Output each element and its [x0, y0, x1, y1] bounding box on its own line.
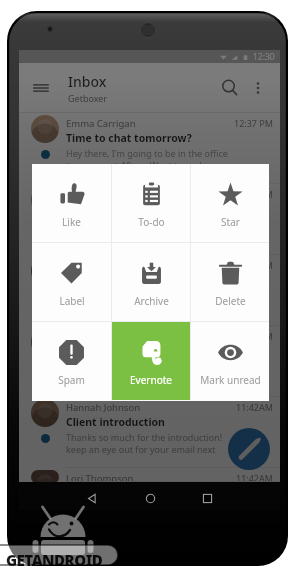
staticText: 12:00 PM	[234, 259, 273, 271]
button[interactable]: Compose	[228, 428, 270, 470]
staticText: Ricky Lane	[66, 259, 113, 272]
staticText: Lunch on Thursday?	[66, 273, 171, 287]
staticText: Archive	[134, 294, 169, 308]
staticText: month attached to this email.	[66, 372, 191, 384]
staticText: I found a great new place around	[66, 289, 207, 301]
button[interactable]: Ricky Lane	[19, 255, 280, 326]
button[interactable]: More options	[247, 77, 269, 99]
button[interactable]: Hannah Johnson	[19, 397, 280, 468]
button[interactable]: Like	[32, 164, 111, 242]
staticText: Weekly report attached	[66, 202, 190, 216]
staticText: Spam	[58, 373, 85, 387]
button[interactable]: Evernote	[112, 322, 190, 400]
button[interactable]: Archive	[112, 243, 190, 321]
staticText: Jerome Bell	[66, 188, 117, 201]
staticText: 12:30	[253, 51, 275, 63]
button[interactable]: Back	[82, 488, 102, 508]
button[interactable]: To-do	[112, 164, 190, 242]
staticText: Mark unread	[200, 373, 261, 387]
staticText: Hannah Johnson	[66, 401, 141, 414]
staticText: To-do	[138, 215, 165, 229]
staticText: Carter Mills	[66, 330, 117, 343]
staticText: Inbox	[68, 72, 107, 91]
button[interactable]: Jerome Bell	[19, 184, 280, 255]
button[interactable]: Open navigation drawer	[28, 75, 54, 101]
staticText: Emma Carrigan	[66, 117, 136, 130]
staticText: tomorrow at 10am. Want to grab a	[66, 159, 213, 171]
button[interactable]: Mark unread	[191, 322, 269, 400]
staticText: Thanks so much for the introduction!	[66, 431, 223, 443]
staticText: GETANDROID	[6, 550, 103, 570]
staticText: 11:42AM	[236, 401, 273, 413]
button[interactable]: Recent apps	[197, 488, 217, 508]
staticText: Please take a look at the numbers	[66, 218, 209, 230]
staticText: Star	[221, 215, 240, 229]
button[interactable]: Spam	[32, 322, 111, 400]
staticText: the corner from the office.	[66, 301, 178, 313]
staticText: 12:37 PM	[234, 117, 273, 129]
staticText: Lori Thompson	[66, 472, 134, 485]
button[interactable]: Lori Thompson	[19, 468, 280, 482]
button[interactable]: Label	[32, 243, 111, 321]
staticText: 12:02 PM	[234, 188, 273, 200]
staticText: Invoice #2271	[66, 344, 138, 358]
staticText: Hi, please find the invoice for last	[66, 360, 207, 372]
staticText: Delete	[215, 294, 246, 308]
staticText: Label	[59, 294, 85, 308]
button[interactable]: Star	[191, 164, 269, 242]
button[interactable]: Emma Carrigan	[19, 113, 280, 184]
staticText: Like	[62, 215, 81, 229]
staticText: Evernote	[130, 373, 172, 387]
staticText: Hey there, I'm going to be in the office	[66, 147, 228, 159]
button[interactable]: Home	[140, 488, 160, 508]
staticText: Getboxer	[68, 92, 108, 104]
staticText: Client introduction	[66, 415, 165, 429]
staticText: keep an eye out for your email next	[66, 443, 216, 455]
staticText: Time to chat tomorrow?	[66, 131, 192, 145]
button[interactable]: Delete	[191, 243, 269, 321]
button[interactable]: Carter Mills	[19, 326, 280, 397]
button[interactable]: Search	[218, 76, 242, 100]
staticText: 11:58AM	[236, 330, 273, 342]
staticText: 11:42AM	[236, 472, 273, 484]
